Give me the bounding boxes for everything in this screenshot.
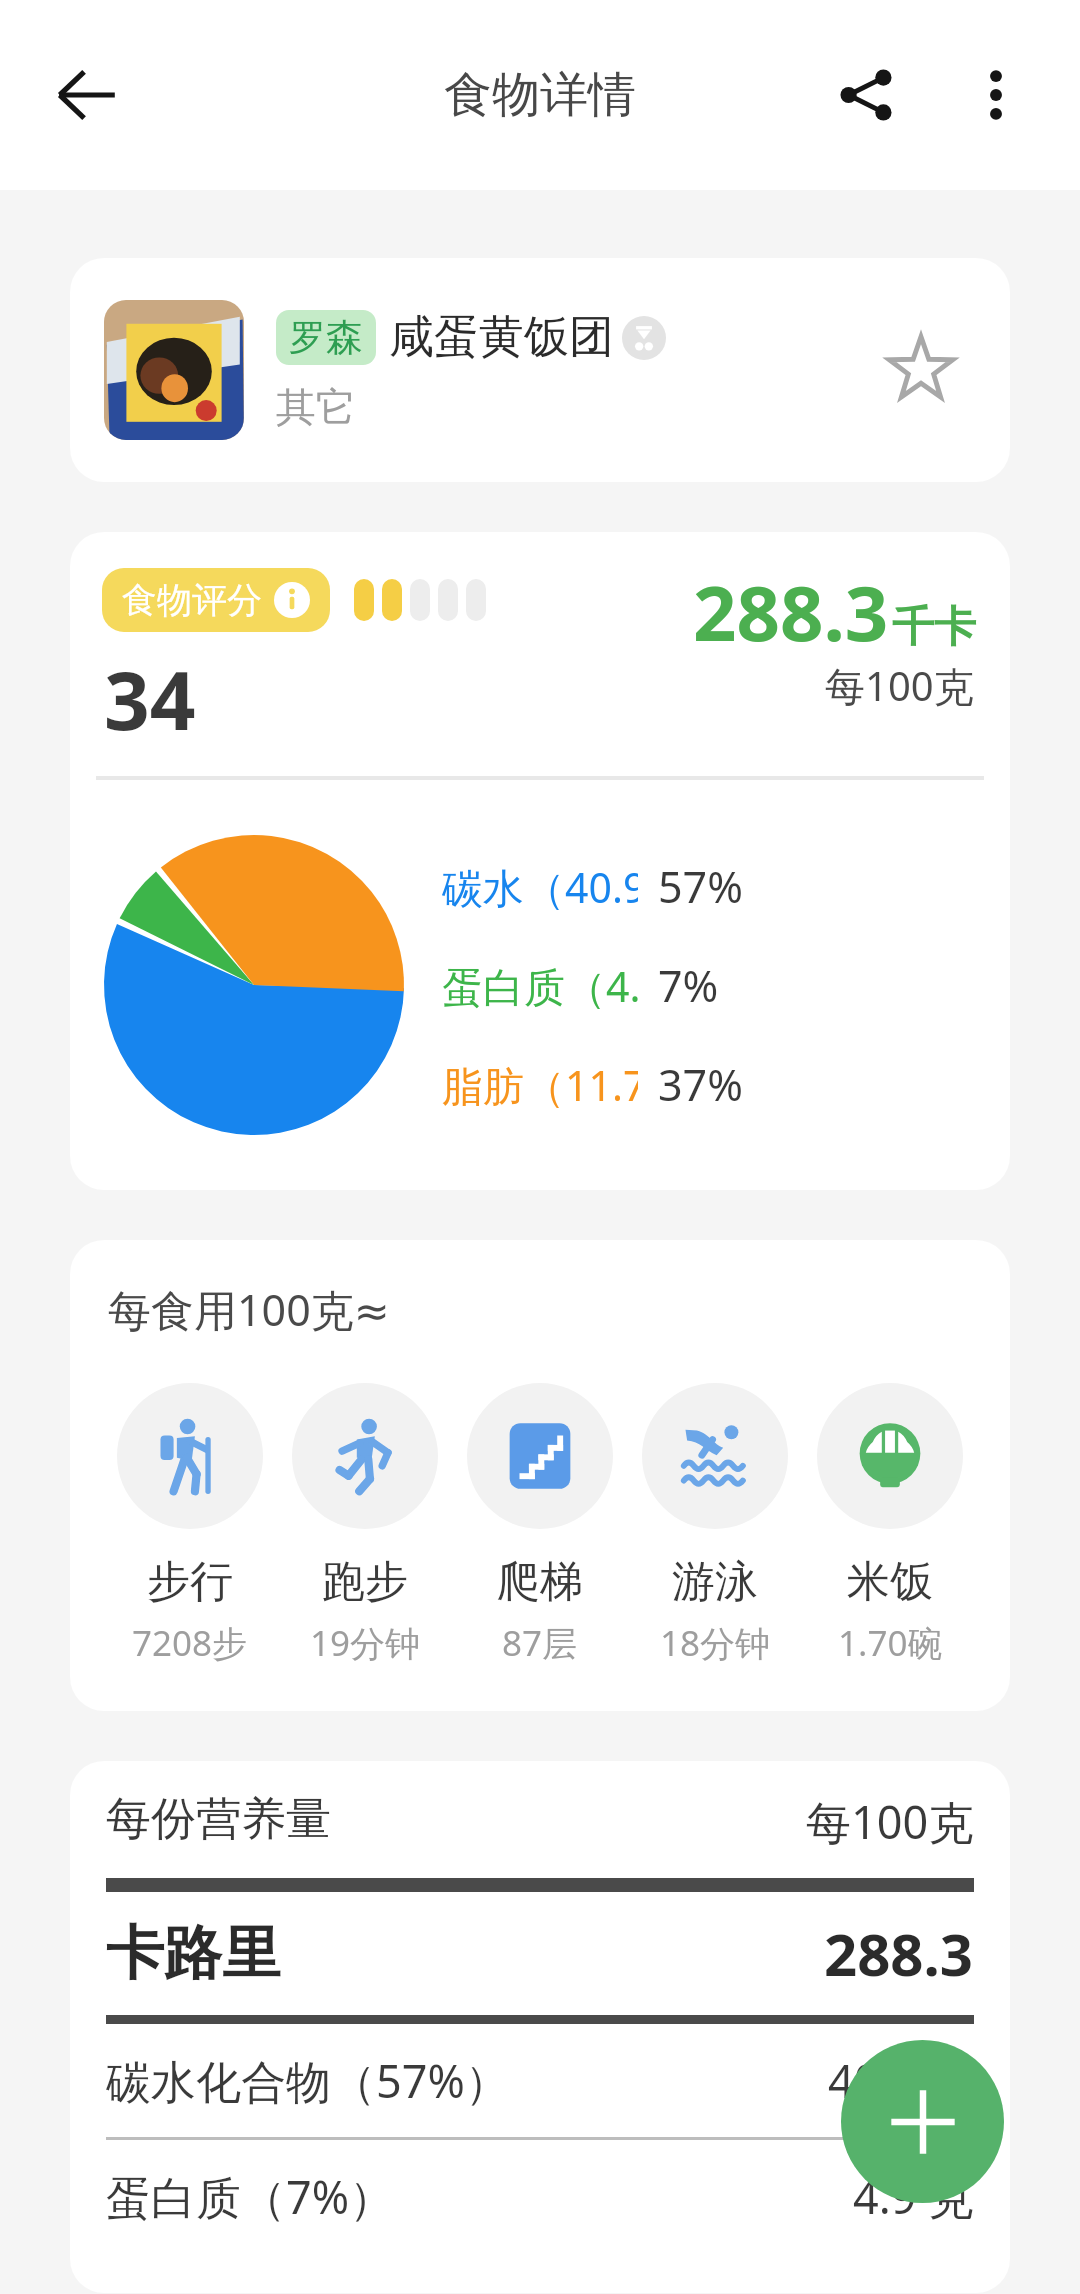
- staticText: 跑步: [322, 1555, 408, 1609]
- staticText: 4.9 克: [853, 2166, 974, 2227]
- staticText: 每食用100克≈: [108, 1280, 390, 1339]
- button[interactable]: Favorite: [866, 315, 976, 425]
- staticText: 40.9 克: [828, 2050, 974, 2111]
- button[interactable]: Back: [30, 39, 142, 151]
- staticText: 288.3: [693, 560, 889, 664]
- staticText: 87层: [502, 1619, 578, 1667]
- staticText: 每份营养量: [106, 1791, 331, 1848]
- staticText: 米饭: [847, 1555, 933, 1609]
- button[interactable]: 游泳: [640, 1383, 790, 1667]
- staticText: 18分钟: [660, 1619, 771, 1667]
- button[interactable]: More options: [940, 39, 1052, 151]
- staticText: 卡路里: [106, 1917, 280, 1990]
- staticText: 蛋白质（4.9…: [442, 958, 638, 1014]
- staticText: 碳水化合物（57%）: [106, 2050, 510, 2111]
- button[interactable]: Add food: [841, 2040, 1004, 2203]
- button[interactable]: 米饭: [815, 1383, 965, 1667]
- button[interactable]: 食物评分: [102, 568, 330, 632]
- staticText: 7%: [658, 956, 719, 1015]
- staticText: 脂肪（11.7…: [442, 1057, 638, 1113]
- staticText: 19分钟: [310, 1619, 421, 1667]
- staticText: 37%: [658, 1055, 743, 1114]
- staticText: 1.70碗: [838, 1619, 943, 1667]
- staticText: 57%: [658, 857, 743, 916]
- staticText: 蛋白质（7%）: [106, 2166, 395, 2227]
- staticText: 步行: [147, 1555, 233, 1609]
- staticText: 咸蛋黄饭团: [389, 309, 614, 366]
- button[interactable]: 跑步: [290, 1383, 440, 1667]
- staticText: 游泳: [672, 1555, 758, 1609]
- staticText: 每100克: [806, 1791, 974, 1852]
- staticText: 食物评分: [122, 578, 262, 622]
- staticText: 碳水（40.9…: [442, 859, 638, 915]
- staticText: 千卡: [892, 601, 976, 654]
- button[interactable]: 爬梯: [465, 1383, 615, 1667]
- staticText: 34: [104, 644, 196, 753]
- button[interactable]: 步行: [115, 1383, 265, 1667]
- staticText: 7208步: [132, 1619, 248, 1667]
- staticText: 每100克: [825, 658, 974, 713]
- staticText: 食物详情: [444, 65, 636, 125]
- staticText: 爬梯: [497, 1555, 583, 1609]
- staticText: 罗森: [289, 314, 363, 361]
- button[interactable]: Share: [810, 39, 922, 151]
- staticText: 288.3: [824, 1914, 974, 1993]
- staticText: 其它: [276, 382, 356, 432]
